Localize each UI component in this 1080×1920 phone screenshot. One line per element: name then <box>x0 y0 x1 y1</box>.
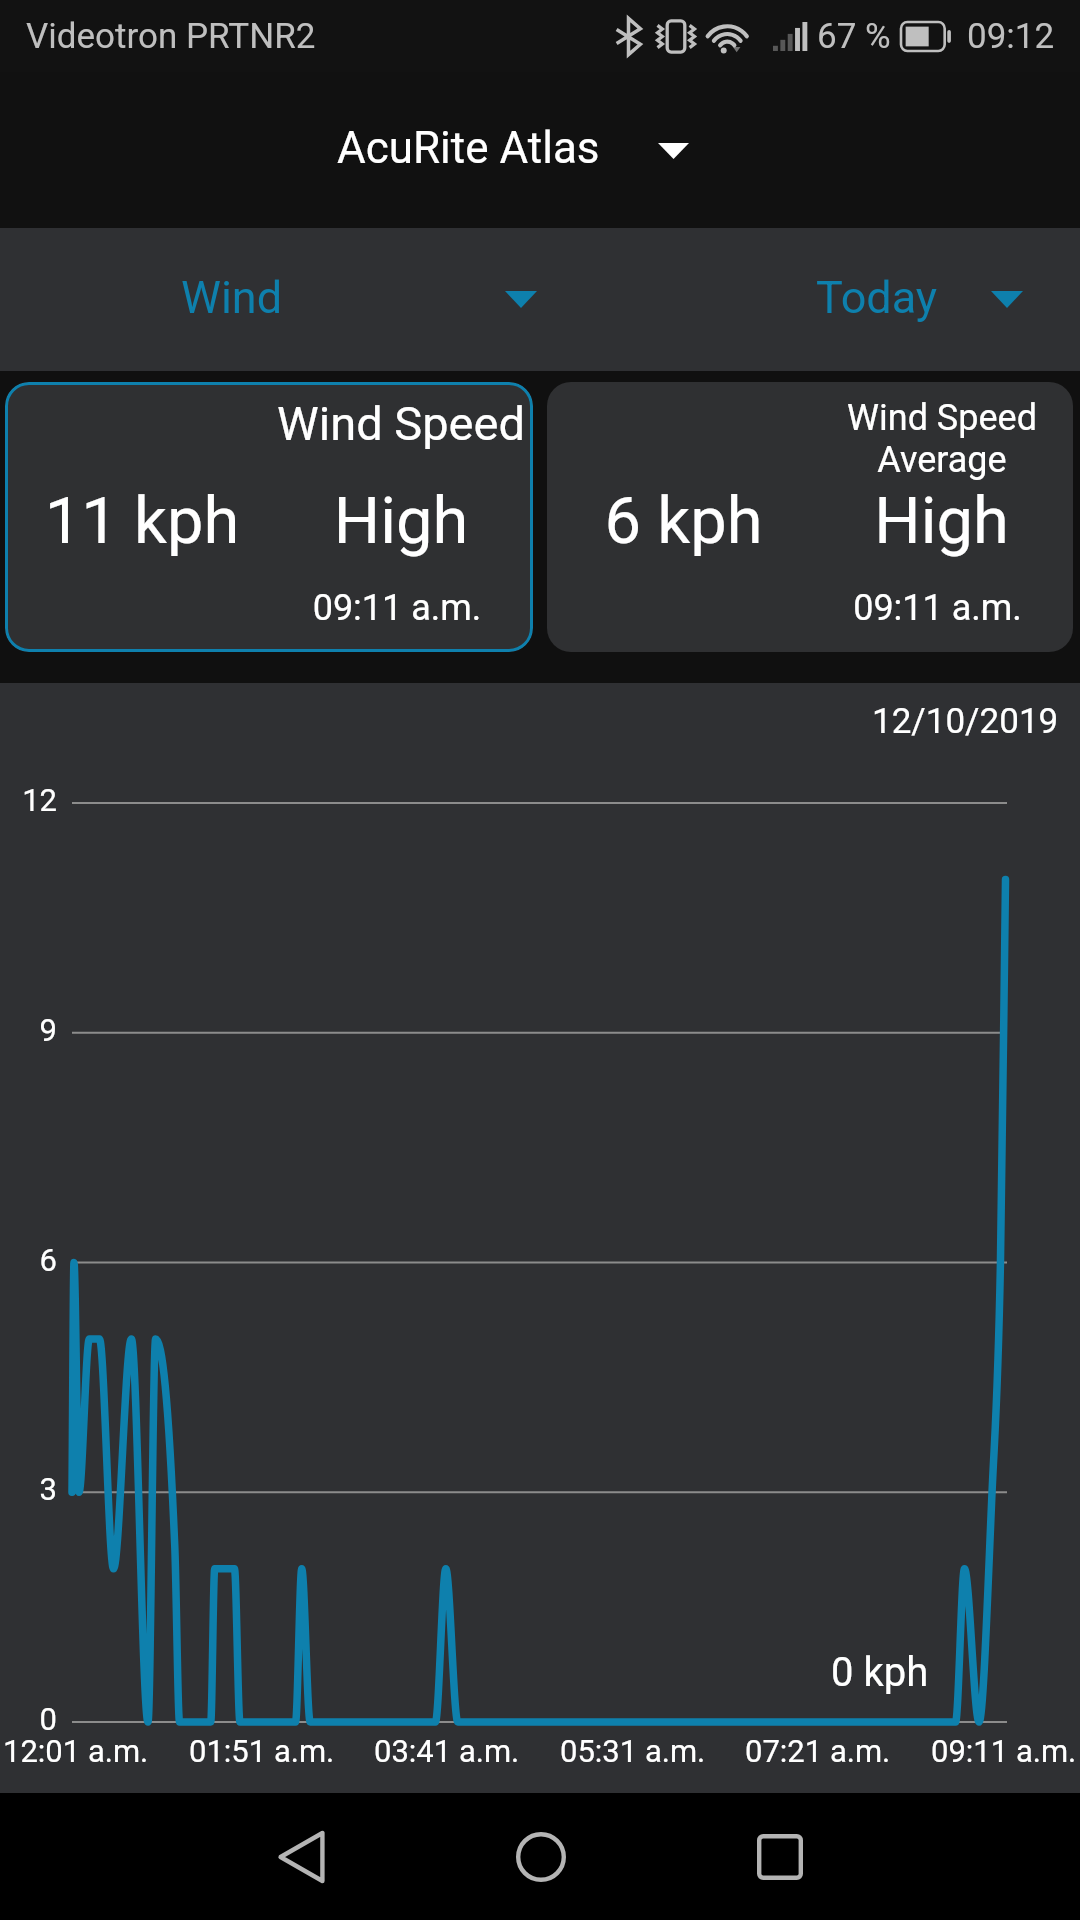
staticText: Average <box>877 439 1007 481</box>
staticText: 07:21 a.m. <box>745 1733 891 1769</box>
button[interactable]: Recents <box>660 1793 899 1920</box>
staticText: AcuRite Atlas <box>337 122 600 174</box>
button[interactable]: 6 kph <box>547 382 1073 652</box>
staticText: Wind <box>181 271 283 324</box>
staticText: 6 <box>5 1242 57 1278</box>
staticText: Today <box>816 271 938 324</box>
button[interactable]: Home <box>421 1793 660 1920</box>
button[interactable]: AcuRite Atlas <box>323 106 703 190</box>
button[interactable]: Today <box>540 228 1080 371</box>
staticText: 6 kph <box>552 483 815 559</box>
button[interactable]: 11 kph <box>5 382 533 652</box>
staticText: 3 <box>5 1471 57 1507</box>
staticText: High <box>810 483 1073 559</box>
button[interactable]: Back <box>182 1793 421 1920</box>
staticText: 01:51 a.m. <box>189 1733 335 1769</box>
staticText: 0 kph <box>831 1649 929 1696</box>
staticText: 05:31 a.m. <box>560 1733 706 1769</box>
staticText: 0 <box>5 1701 57 1737</box>
staticText: 09:12 <box>967 16 1055 57</box>
staticText: 11 kph <box>10 483 274 559</box>
staticText: 12 <box>5 782 57 818</box>
staticText: 9 <box>5 1012 57 1048</box>
staticText: 12:01 a.m. <box>3 1733 149 1769</box>
staticText: Wind Speed <box>277 396 525 451</box>
staticText: Videotron PRTNR2 <box>26 16 316 57</box>
staticText: 09:11 a.m. <box>265 587 529 629</box>
staticText: 09:11 a.m. <box>931 1733 1077 1769</box>
button[interactable]: Wind <box>0 228 540 371</box>
staticText: 67 % <box>817 16 891 57</box>
staticText: 12/10/2019 <box>872 701 1059 742</box>
staticText: Wind Speed <box>847 397 1037 439</box>
staticText: 09:11 a.m. <box>806 587 1069 629</box>
staticText: High <box>269 483 533 559</box>
staticText: 03:41 a.m. <box>374 1733 520 1769</box>
